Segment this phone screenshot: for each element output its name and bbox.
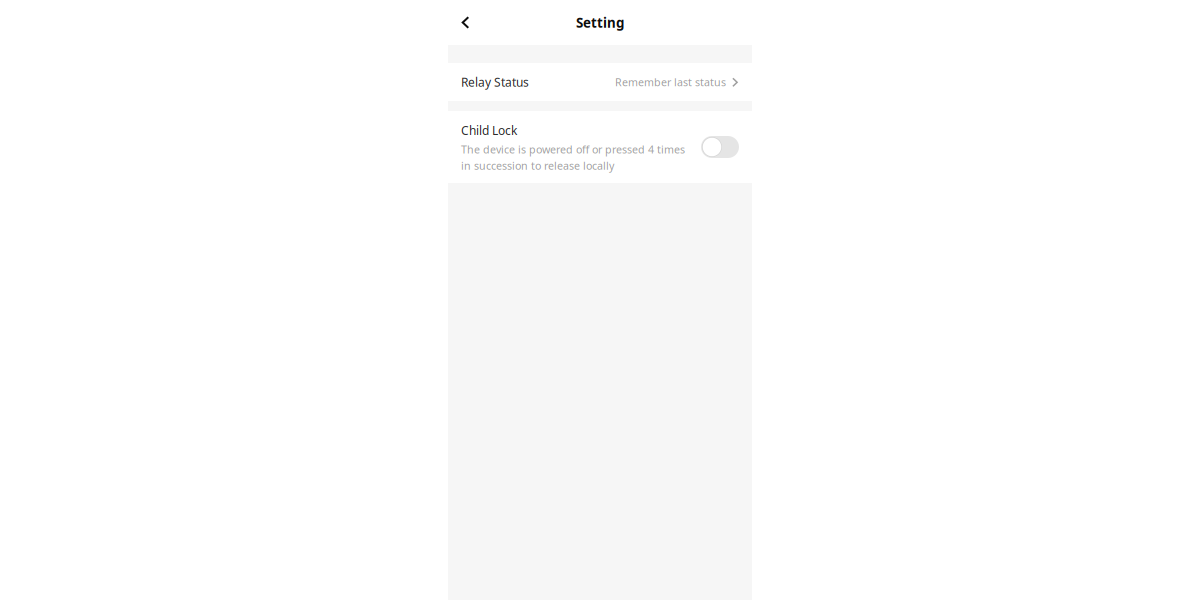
button[interactable]: Back	[452, 7, 478, 37]
staticText: The device is powered off or pressed 4 t…	[461, 142, 685, 173]
staticText: Remember last status	[615, 75, 726, 89]
staticText: Child Lock	[461, 122, 517, 138]
button[interactable]: Child Lock	[701, 136, 739, 158]
staticText: Relay Status	[461, 74, 529, 90]
staticText: Setting	[576, 14, 624, 31]
button[interactable]: Relay Status	[448, 63, 752, 101]
